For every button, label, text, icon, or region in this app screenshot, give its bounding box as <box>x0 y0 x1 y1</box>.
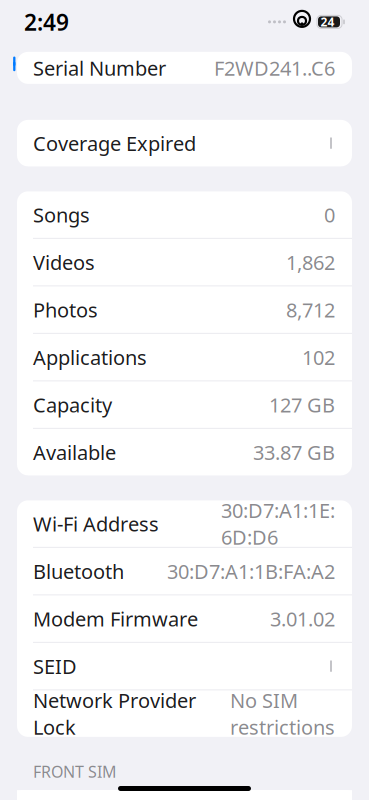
staticText: 2:49 <box>24 7 69 37</box>
button[interactable]: SEID <box>17 643 352 689</box>
staticText: FRONT SIM <box>33 761 117 782</box>
button[interactable]: Applications <box>17 334 352 380</box>
staticText: 0 <box>324 201 335 228</box>
staticText: Capacity <box>33 391 112 418</box>
staticText: 127 GB <box>269 391 335 418</box>
staticText: F2WD241..C6 <box>214 55 335 81</box>
button[interactable]: Wi-Fi Address <box>17 500 352 547</box>
staticText: Wi-Fi Address <box>33 510 159 537</box>
button[interactable]: Capacity <box>17 381 352 428</box>
button[interactable]: Serial Number <box>17 58 352 78</box>
staticText: 30:D7:A1:1B:FA:A2 <box>167 558 335 584</box>
staticText: No SIM restrictions <box>230 687 335 740</box>
staticText: 24 <box>320 14 334 30</box>
staticText: 3.01.02 <box>270 605 335 632</box>
staticText: SEID <box>33 653 77 679</box>
staticText: Available <box>33 439 116 465</box>
button[interactable]: Available <box>17 429 352 475</box>
staticText: 102 <box>302 344 335 370</box>
staticText: Network Provider Lock <box>33 687 196 740</box>
staticText: Photos <box>33 296 98 323</box>
staticText: Coverage Expired <box>33 130 196 156</box>
button[interactable]: Songs <box>17 191 352 238</box>
staticText: Bluetooth <box>33 558 124 584</box>
button[interactable]: Network Provider Lock <box>17 690 352 737</box>
button[interactable]: Coverage Expired <box>17 120 352 166</box>
staticText: General <box>26 49 111 79</box>
staticText: 33.87 GB <box>253 439 335 465</box>
button[interactable]: Modem Firmware <box>17 595 352 642</box>
staticText: 1,862 <box>286 249 335 275</box>
staticText: About <box>151 49 217 79</box>
button[interactable]: Videos <box>17 239 352 285</box>
staticText: Modem Firmware <box>33 605 198 632</box>
staticText: Applications <box>33 344 147 370</box>
button[interactable]: Bluetooth <box>17 548 352 594</box>
button[interactable]: General <box>0 44 121 84</box>
button[interactable]: Photos <box>17 286 352 333</box>
staticText: Songs <box>33 201 90 228</box>
staticText: 30:D7:A1:1E:6D:D6 <box>221 497 335 550</box>
staticText: 8,712 <box>286 296 335 323</box>
staticText: Serial Number <box>33 55 166 81</box>
staticText: Videos <box>33 249 95 275</box>
